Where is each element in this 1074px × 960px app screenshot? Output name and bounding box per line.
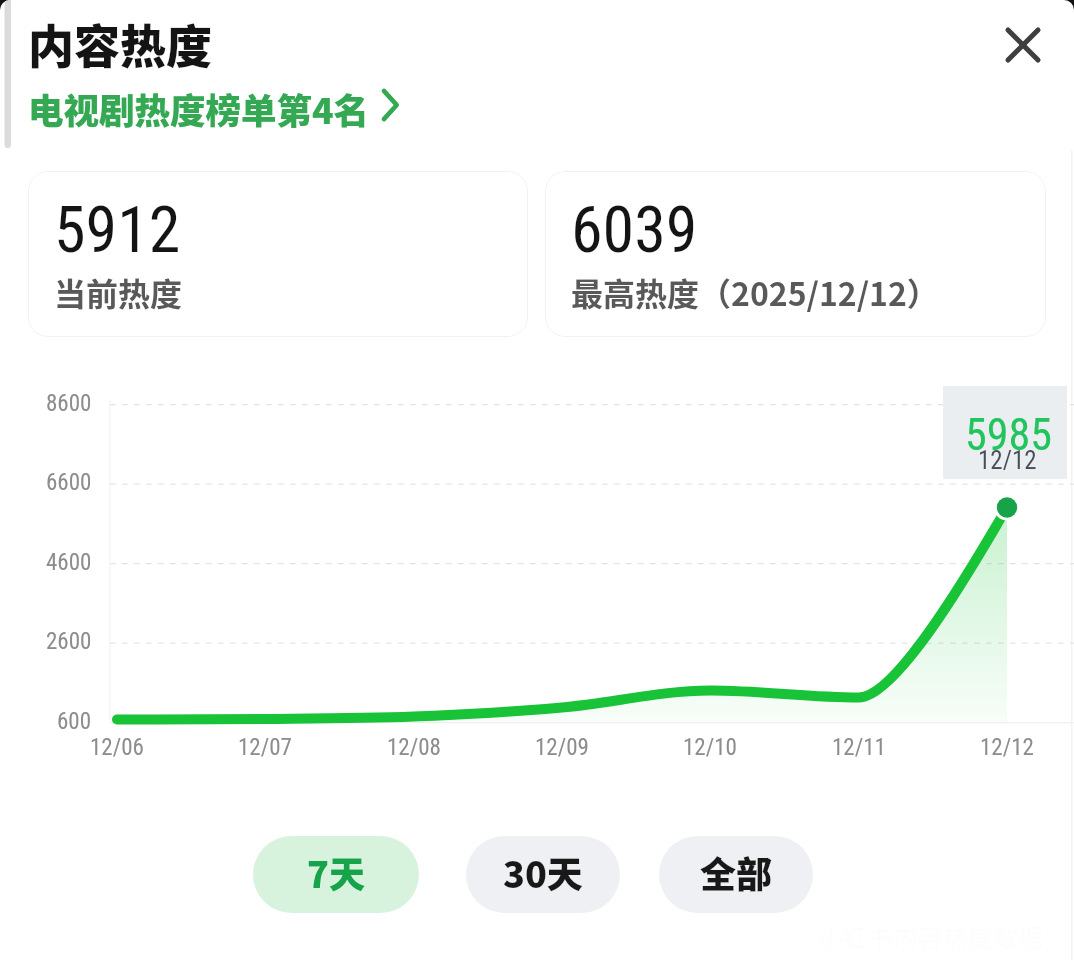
staticText: 2600 <box>46 628 92 655</box>
staticText: 12/12 <box>978 446 1037 475</box>
staticText: 12/08 <box>387 734 441 761</box>
staticText: 4600 <box>46 549 92 576</box>
staticText: 12/07 <box>238 734 292 761</box>
staticText: 12/12 <box>980 734 1034 761</box>
staticText: 600 <box>57 708 92 735</box>
staticText: 7天 <box>307 846 365 898</box>
staticText: 6600 <box>46 469 92 496</box>
staticText: 最高热度（2025/12/12） <box>571 269 939 315</box>
staticText: 12/06 <box>90 734 144 761</box>
staticText: 当前热度 <box>54 269 183 315</box>
button[interactable]: 5912 <box>28 171 528 337</box>
staticText: 30天 <box>503 846 583 898</box>
staticText: 12/10 <box>683 734 737 761</box>
staticText: 全部 <box>700 846 773 898</box>
staticText: 12/09 <box>535 734 589 761</box>
button[interactable]: 全部 <box>659 836 813 913</box>
button[interactable]: 30天 <box>466 836 620 913</box>
staticText: 12/11 <box>832 734 886 761</box>
button[interactable]: 6039 <box>545 171 1046 337</box>
button[interactable]: 5985 <box>943 386 1067 479</box>
button[interactable]: Close <box>991 13 1055 77</box>
staticText: 5985 <box>965 409 1052 461</box>
staticText: 8600 <box>46 390 92 417</box>
staticText: 内容热度 <box>28 10 212 77</box>
button[interactable]: 电视剧热度榜单第4名 <box>28 83 398 134</box>
button[interactable]: 7天 <box>253 836 419 913</box>
staticText: 电视剧热度榜单第4名 <box>28 83 370 134</box>
staticText: 6039 <box>571 193 698 268</box>
staticText: 5912 <box>54 193 181 268</box>
